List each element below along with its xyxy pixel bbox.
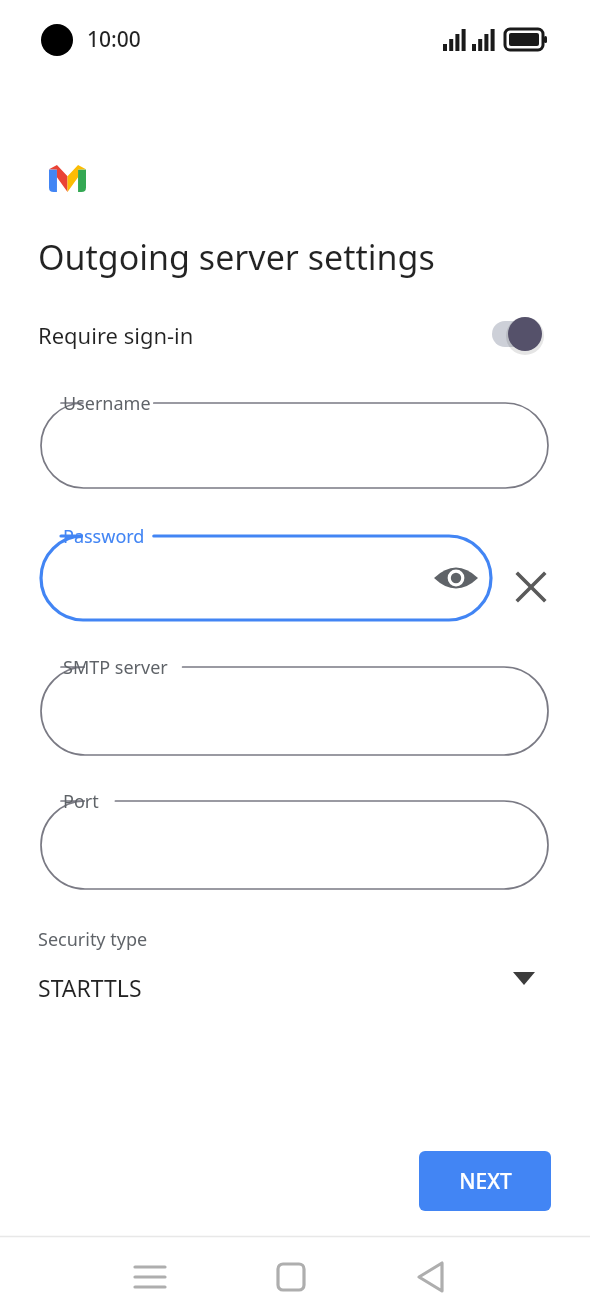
staticText: Require sign-in <box>38 320 194 350</box>
button[interactable]: Home <box>261 1247 321 1307</box>
button[interactable]: NEXT <box>419 1151 551 1211</box>
button[interactable]: SMTP server <box>41 667 548 755</box>
button[interactable]: Port <box>41 801 548 889</box>
button[interactable]: Password <box>41 536 491 620</box>
staticText: Username <box>63 391 151 416</box>
staticText: STARTTLS <box>38 972 142 1003</box>
staticText: Security type <box>38 927 148 952</box>
staticText: 10:00 <box>87 25 141 54</box>
staticText: Port <box>63 789 99 814</box>
button[interactable]: Require sign-in <box>0 305 590 363</box>
staticText: NEXT <box>459 1167 512 1196</box>
button[interactable]: Back <box>402 1247 462 1307</box>
button[interactable]: Show password <box>432 554 480 602</box>
staticText: Password <box>63 524 145 549</box>
staticText: Outgoing server settings <box>38 234 435 280</box>
button[interactable]: Security type <box>0 920 590 1012</box>
staticText: SMTP server <box>63 655 168 680</box>
button[interactable]: Username <box>41 403 548 488</box>
button[interactable]: Recent apps <box>120 1247 180 1307</box>
button[interactable]: Clear password <box>507 563 555 611</box>
